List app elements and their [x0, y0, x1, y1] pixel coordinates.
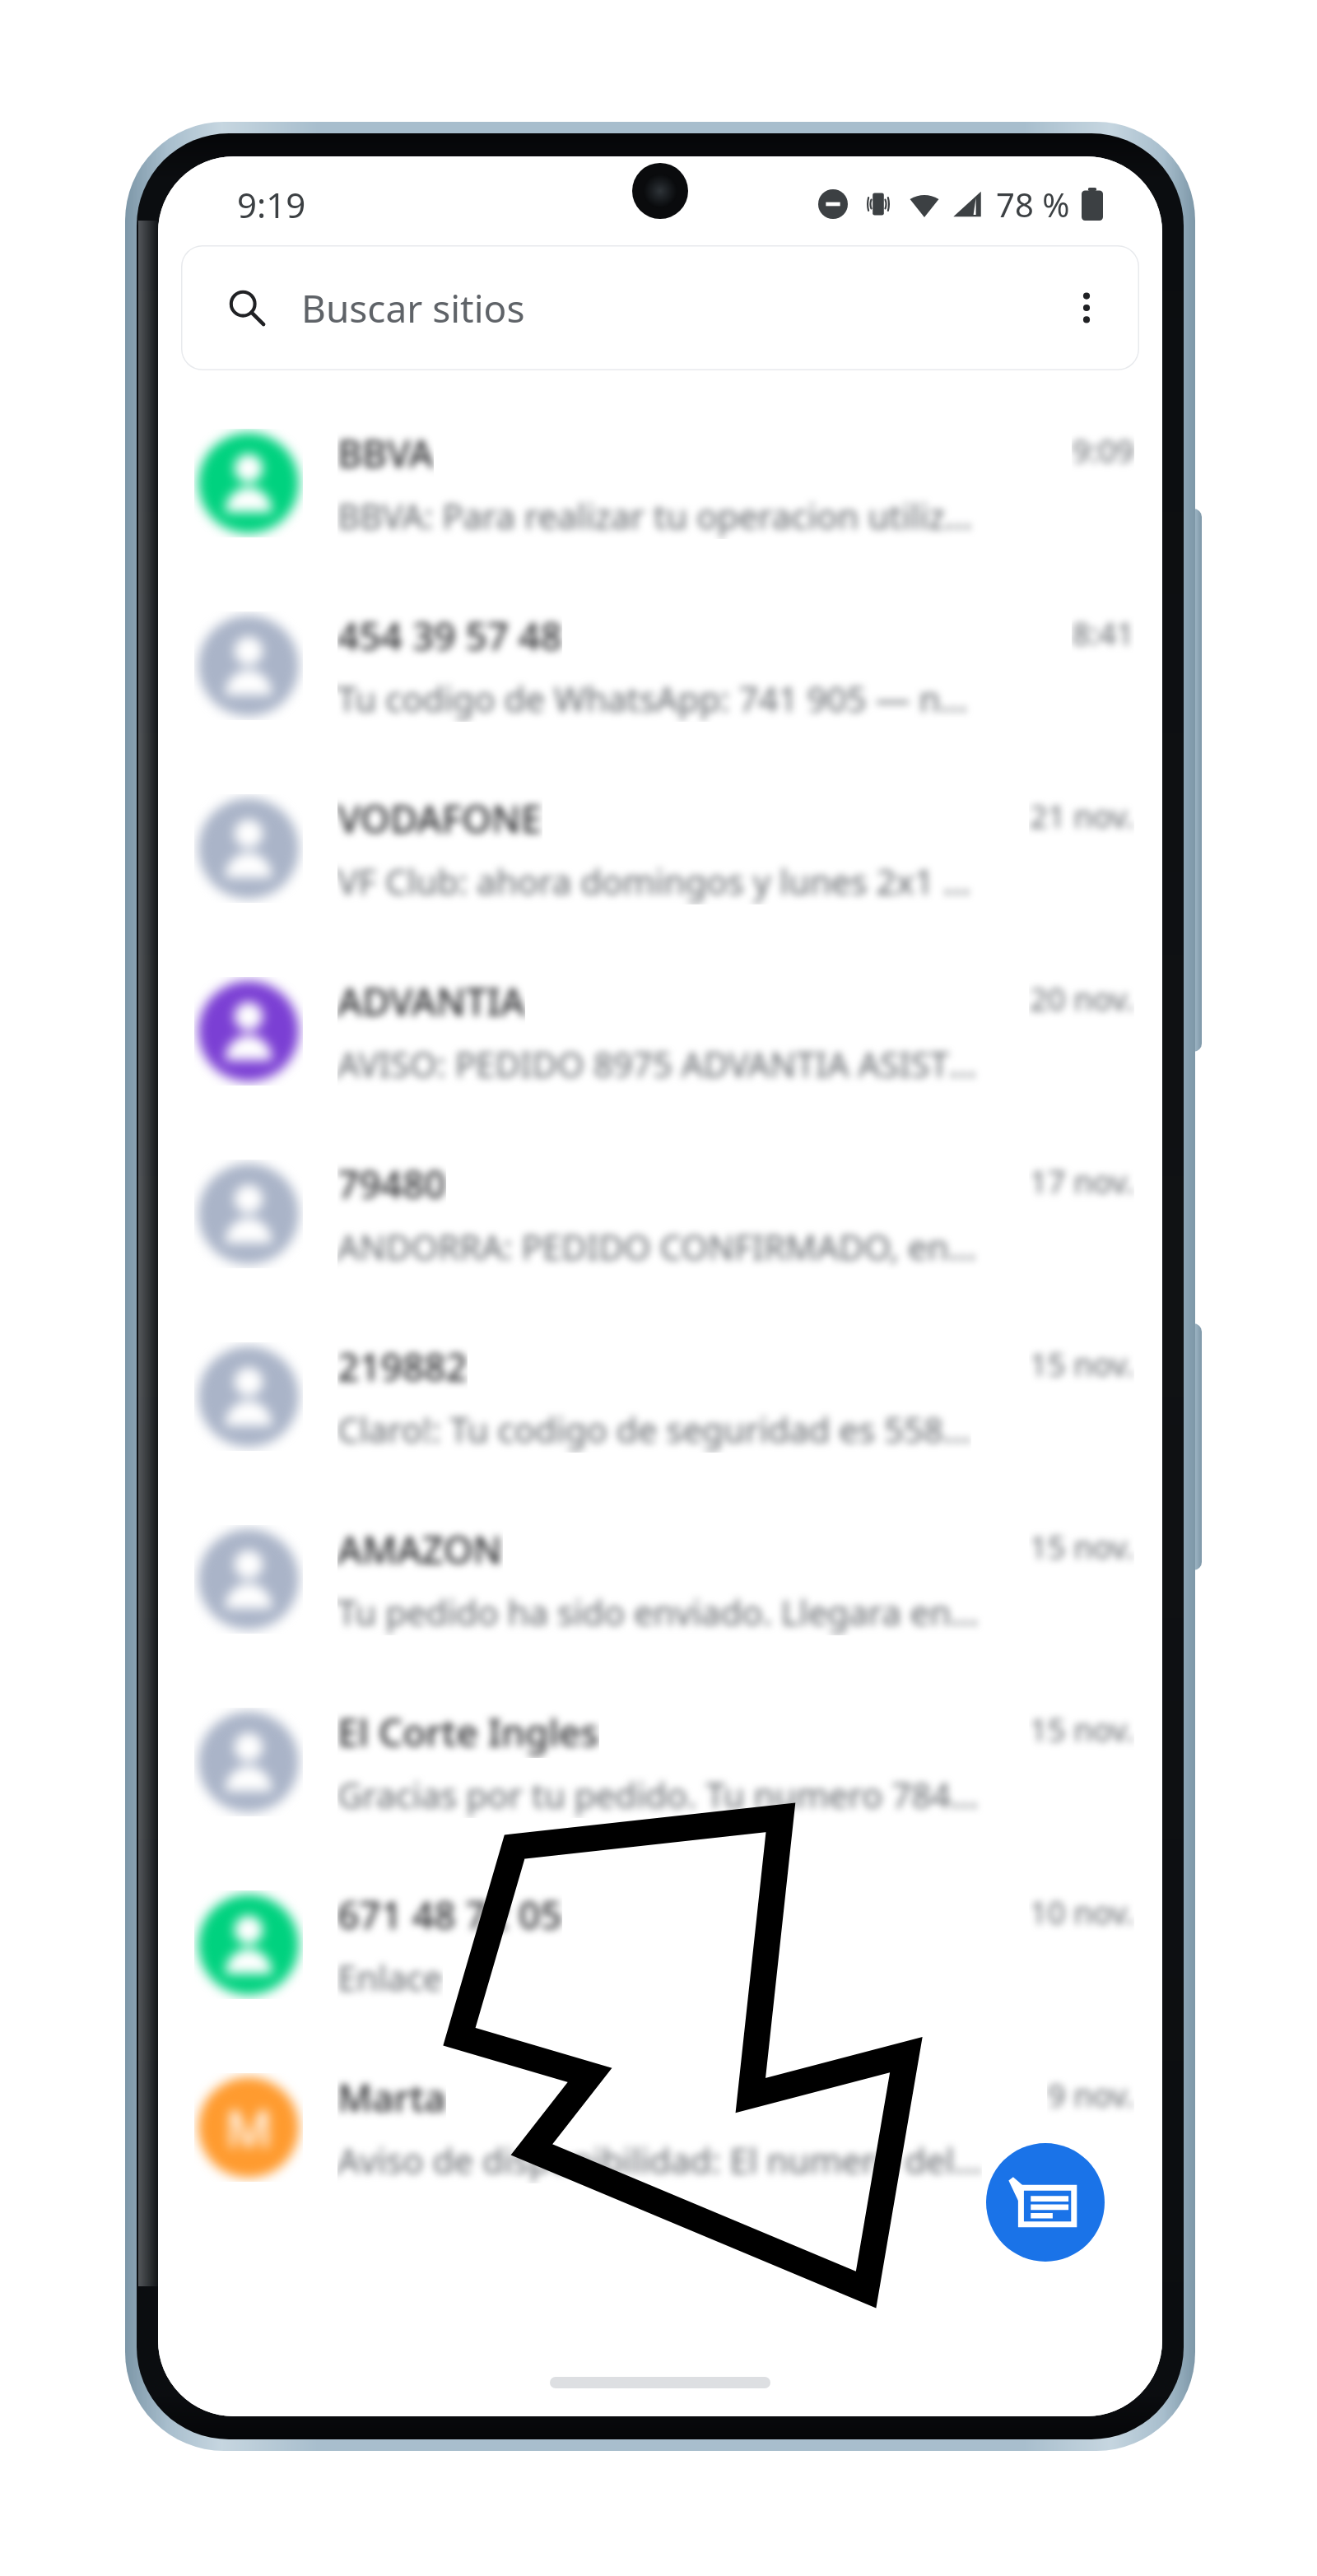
staticText: Enlace: [337, 1954, 443, 2001]
staticText: Tu codigo de WhatsApp: 741 905 — no lo…: [337, 675, 984, 722]
button[interactable]: ADVANTIA: [158, 940, 1162, 1123]
staticText: 15 nov.: [1029, 1525, 1134, 1568]
staticText: BBVA: [337, 427, 434, 479]
staticText: 219882: [337, 1341, 468, 1393]
staticText: ADVANTIA: [337, 975, 525, 1027]
staticText: ANDORRA: PEDIDO CONFIRMADO, entrega el 2…: [337, 1223, 984, 1270]
button[interactable]: 219882: [158, 1305, 1162, 1488]
staticText: 15 nov.: [1029, 1708, 1134, 1751]
button[interactable]: BBVA: [158, 392, 1162, 574]
staticText: 21 nov.: [1029, 794, 1134, 837]
staticText: Gracias por tu pedido. Tu numero 784 185…: [337, 1771, 984, 1818]
staticText: 78 %: [996, 182, 1070, 226]
staticText: Tu pedido ha sido enviado. Llegara entre…: [337, 1588, 984, 1635]
button[interactable]: VODAFONE: [158, 757, 1162, 940]
button[interactable]: Iniciar chat: [986, 2143, 1105, 2262]
staticText: 17 nov.: [1029, 1160, 1134, 1202]
staticText: 20 nov.: [1029, 977, 1134, 1020]
button[interactable]: 79480: [158, 1123, 1162, 1305]
staticText: Aviso de disponibilidad: El numero del…: [337, 2137, 982, 2183]
button[interactable]: 671 48 72 05: [158, 1853, 1162, 2036]
staticText: 8:41: [1072, 611, 1134, 654]
staticText: 79480: [337, 1158, 446, 1210]
staticText: Claro!: Tu codigo de seguridad es 558…: [337, 1406, 971, 1453]
staticText: VF Club: ahora domingos y lunes 2x1 en…: [337, 858, 984, 904]
button[interactable]: AMAZON: [158, 1488, 1162, 1671]
button[interactable]: Más opciones: [1047, 268, 1126, 347]
staticText: 9:09: [1072, 429, 1134, 472]
staticText: BBVA: Para realizar tu operacion utiliza…: [337, 492, 984, 539]
button[interactable]: El Corte Ingles: [158, 1671, 1162, 1853]
staticText: El Corte Ingles: [337, 1706, 599, 1758]
button[interactable]: 454 39 57 48: [158, 574, 1162, 757]
staticText: 671 48 72 05: [337, 1889, 562, 1941]
staticText: AMAZON: [337, 1523, 503, 1575]
staticText: M: [226, 2093, 272, 2162]
staticText: Buscar sitios: [301, 282, 525, 334]
staticText: 454 39 57 48: [337, 610, 562, 662]
button[interactable]: M: [158, 2036, 1162, 2219]
staticText: Marta: [337, 2071, 446, 2123]
staticText: 15 nov.: [1029, 1342, 1134, 1385]
staticText: 9:19: [237, 181, 306, 228]
staticText: 9 nov.: [1047, 2073, 1134, 2116]
staticText: VODAFONE: [337, 793, 542, 844]
staticText: AVISO: PEDIDO 8975 ADVANTIA ASISTIDO…: [337, 1040, 984, 1087]
button[interactable]: Buscar sitios: [181, 245, 1139, 370]
staticText: 10 nov.: [1029, 1890, 1134, 1933]
